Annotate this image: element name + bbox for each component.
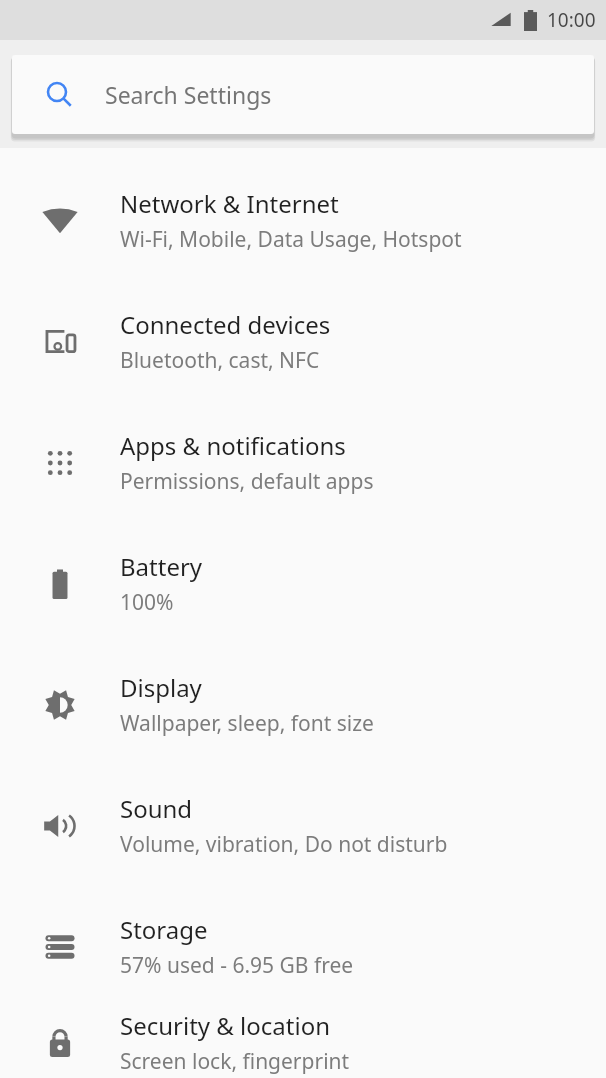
staticText: Apps & notifications <box>120 429 346 462</box>
button[interactable]: Storage <box>0 886 606 1007</box>
button[interactable]: Security & location <box>0 1007 606 1078</box>
other: Search <box>45 80 75 110</box>
staticText: Network & Internet <box>120 187 339 220</box>
button[interactable]: Display <box>0 644 606 765</box>
button[interactable]: Search <box>12 55 594 134</box>
staticText: Battery <box>120 550 203 583</box>
staticText: Wallpaper, sleep, font size <box>120 709 374 738</box>
staticText: Bluetooth, cast, NFC <box>120 346 320 375</box>
button[interactable]: Apps & notifications <box>0 402 606 523</box>
staticText: 100% <box>120 588 174 617</box>
staticText: Search Settings <box>105 79 272 110</box>
button[interactable]: Sound <box>0 765 606 886</box>
staticText: Screen lock, fingerprint <box>120 1047 350 1076</box>
button[interactable]: Connected devices <box>0 281 606 402</box>
staticText: Connected devices <box>120 308 331 341</box>
staticText: Sound <box>120 792 193 825</box>
staticText: Security & location <box>120 1009 331 1042</box>
staticText: 57% used - 6.95 GB free <box>120 951 354 980</box>
staticText: 10:00 <box>547 7 596 33</box>
staticText: Wi-Fi, Mobile, Data Usage, Hotspot <box>120 225 462 254</box>
staticText: Permissions, default apps <box>120 467 374 496</box>
button[interactable]: Battery <box>0 523 606 644</box>
staticText: Storage <box>120 913 208 946</box>
staticText: Display <box>120 671 202 704</box>
staticText: Volume, vibration, Do not disturb <box>120 830 448 859</box>
button[interactable]: Network & Internet <box>0 160 606 281</box>
